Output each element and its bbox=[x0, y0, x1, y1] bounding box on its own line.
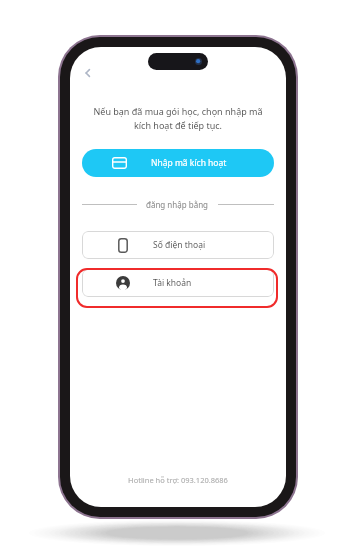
button[interactable]: Tài khoản bbox=[82, 269, 274, 297]
staticText: Nhập mã kích hoạt bbox=[151, 157, 227, 169]
staticText: Số điện thoại bbox=[153, 239, 206, 251]
button[interactable]: Back bbox=[76, 61, 100, 85]
button[interactable]: Nhập mã kích hoạt bbox=[82, 149, 274, 177]
staticText: Nếu bạn đã mua gói học, chọn nhập mã kíc… bbox=[78, 105, 278, 132]
staticText: Tài khoản bbox=[153, 277, 192, 289]
staticText: đăng nhập bằng bbox=[146, 199, 209, 210]
button[interactable]: Số điện thoại bbox=[82, 231, 274, 259]
staticText: Hotline hỗ trợ: 093.120.8686 bbox=[70, 475, 286, 485]
